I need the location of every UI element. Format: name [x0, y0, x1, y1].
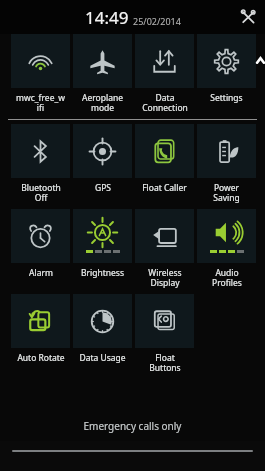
- staticText: Power Saving: [213, 182, 240, 203]
- staticText: Brightness: [81, 267, 124, 279]
- button[interactable]: Auto Rotate: [11, 294, 70, 348]
- button[interactable]: Audio Profiles: [197, 209, 256, 263]
- staticText: Audio Profiles: [212, 267, 242, 288]
- staticText: Bluetooth Off: [21, 182, 61, 203]
- button[interactable]: Alarm: [11, 209, 70, 263]
- button[interactable]: Float Caller: [135, 124, 194, 178]
- staticText: mwc_free_w ifi: [16, 92, 65, 113]
- staticText: Data Connection: [142, 92, 188, 113]
- button[interactable]: mwc_free_w ifi: [11, 34, 70, 88]
- button[interactable]: Bluetooth Off: [11, 124, 70, 178]
- staticText: Float Buttons: [149, 352, 181, 373]
- button[interactable]: Aeroplane mode: [73, 34, 132, 88]
- button[interactable]: Collapse: [256, 34, 265, 88]
- staticText: Auto Rotate: [17, 352, 65, 364]
- button[interactable]: Float Buttons: [135, 294, 194, 348]
- staticText: Float Caller: [142, 182, 187, 194]
- staticText: Data Usage: [79, 352, 126, 364]
- staticText: GPS: [95, 182, 111, 194]
- button[interactable]: Settings: [197, 34, 256, 88]
- staticText: 14:49: [85, 6, 129, 29]
- button[interactable]: GPS: [73, 124, 132, 178]
- button[interactable]: Power Saving: [197, 124, 256, 178]
- staticText: Emergency calls only: [0, 419, 265, 433]
- staticText: Settings: [210, 92, 243, 104]
- button[interactable]: Tools: [238, 7, 258, 27]
- button[interactable]: Data Usage: [73, 294, 132, 348]
- button[interactable]: Brightness: [73, 209, 132, 263]
- button[interactable]: Wireless Display: [135, 209, 194, 263]
- staticText: Alarm: [29, 267, 53, 279]
- staticText: 25/02/2014: [133, 15, 181, 27]
- staticText: Wireless Display: [148, 267, 182, 288]
- button[interactable]: Data Connection: [135, 34, 194, 88]
- staticText: Aeroplane mode: [82, 92, 123, 113]
